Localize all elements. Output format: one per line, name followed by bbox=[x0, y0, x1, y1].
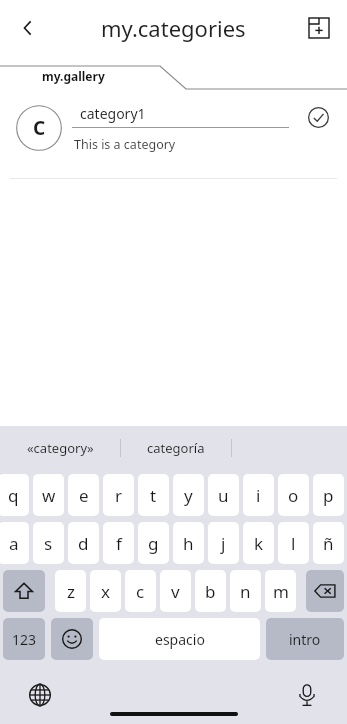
staticText: k bbox=[254, 532, 264, 555]
staticText: g bbox=[148, 532, 159, 555]
staticText: y bbox=[184, 484, 193, 507]
staticText: v bbox=[171, 580, 180, 603]
button[interactable]: Add category bbox=[299, 8, 339, 48]
staticText: h bbox=[183, 532, 194, 555]
staticText: p bbox=[323, 484, 334, 507]
staticText: r bbox=[115, 484, 123, 507]
button[interactable]: 123 bbox=[3, 618, 45, 660]
staticText: u bbox=[218, 484, 229, 507]
button[interactable]: l bbox=[278, 522, 309, 564]
button[interactable]: c bbox=[125, 570, 156, 612]
button[interactable]: r bbox=[103, 474, 134, 516]
button[interactable]: Shift bbox=[3, 570, 45, 612]
staticText: category1 bbox=[80, 104, 146, 123]
button[interactable]: v bbox=[160, 570, 191, 612]
button[interactable]: o bbox=[278, 474, 309, 516]
button[interactable]: categoría bbox=[121, 431, 231, 465]
staticText: w bbox=[42, 484, 56, 507]
staticText: z bbox=[67, 580, 75, 603]
button[interactable]: C bbox=[0, 90, 347, 166]
button[interactable]: espacio bbox=[99, 618, 260, 660]
staticText: c bbox=[136, 580, 145, 603]
button[interactable]: h bbox=[173, 522, 204, 564]
staticText: f bbox=[116, 532, 122, 555]
staticText: l bbox=[291, 532, 296, 555]
button[interactable]: Backspace bbox=[306, 570, 344, 612]
button[interactable]: «category» bbox=[0, 431, 120, 465]
button[interactable]: u bbox=[208, 474, 239, 516]
button[interactable]: e bbox=[68, 474, 99, 516]
staticText: x bbox=[101, 580, 110, 603]
button[interactable]: a bbox=[0, 522, 29, 564]
staticText: i bbox=[256, 484, 261, 507]
button[interactable]: Change language bbox=[22, 677, 58, 713]
staticText: my.gallery bbox=[42, 68, 105, 84]
button[interactable]: s bbox=[33, 522, 64, 564]
button[interactable]: n bbox=[230, 570, 261, 612]
staticText: s bbox=[44, 532, 53, 555]
staticText: b bbox=[205, 580, 216, 603]
staticText: «category» bbox=[27, 439, 94, 457]
button[interactable]: Emoji bbox=[51, 618, 93, 660]
button[interactable]: Back bbox=[8, 8, 48, 48]
staticText: j bbox=[221, 532, 226, 555]
staticText: e bbox=[79, 484, 89, 507]
staticText: categoría bbox=[147, 439, 205, 457]
staticText: This is a category bbox=[74, 136, 176, 153]
button[interactable]: ñ bbox=[313, 522, 344, 564]
button[interactable]: x bbox=[90, 570, 121, 612]
button[interactable]: my.gallery bbox=[0, 56, 347, 90]
button[interactable]: intro bbox=[266, 618, 344, 660]
staticText: my.categories bbox=[101, 13, 246, 43]
button[interactable]: g bbox=[138, 522, 169, 564]
button[interactable]: k bbox=[243, 522, 274, 564]
staticText: n bbox=[240, 580, 251, 603]
button[interactable]: b bbox=[195, 570, 226, 612]
button[interactable]: y bbox=[173, 474, 204, 516]
staticText: o bbox=[288, 484, 299, 507]
staticText: d bbox=[78, 532, 89, 555]
button[interactable]: m bbox=[265, 570, 296, 612]
button[interactable]: Voice input bbox=[289, 677, 325, 713]
staticText: espacio bbox=[155, 630, 205, 649]
button[interactable]: w bbox=[33, 474, 64, 516]
staticText: C bbox=[33, 115, 46, 141]
staticText: intro bbox=[289, 630, 321, 649]
staticText: a bbox=[9, 532, 19, 555]
button[interactable]: i bbox=[243, 474, 274, 516]
staticText: ñ bbox=[323, 532, 334, 555]
staticText: m bbox=[273, 580, 289, 603]
staticText: q bbox=[8, 484, 19, 507]
staticText: t bbox=[150, 484, 157, 507]
button[interactable]: j bbox=[208, 522, 239, 564]
staticText: 123 bbox=[12, 630, 37, 649]
button[interactable]: d bbox=[68, 522, 99, 564]
button[interactable]: t bbox=[138, 474, 169, 516]
button[interactable]: q bbox=[0, 474, 29, 516]
button[interactable]: Confirm bbox=[301, 100, 335, 134]
button[interactable]: p bbox=[313, 474, 344, 516]
button[interactable]: z bbox=[55, 570, 86, 612]
button[interactable]: f bbox=[103, 522, 134, 564]
